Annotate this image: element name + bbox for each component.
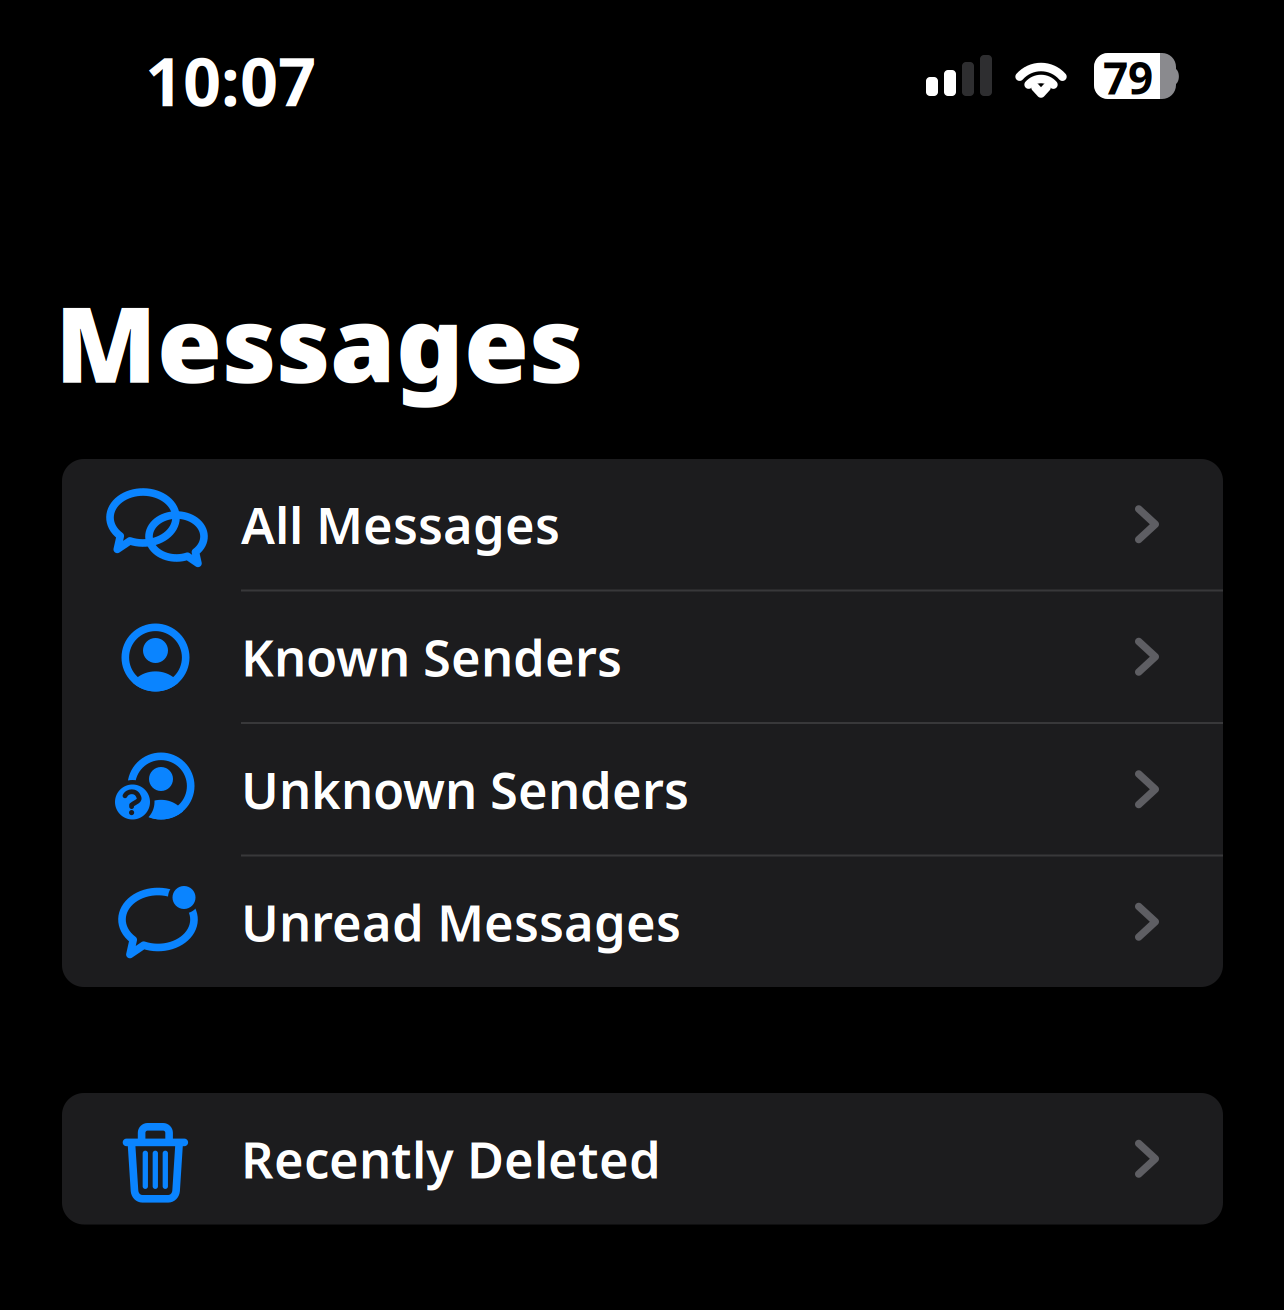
staticText: Unread Messages [241,888,681,955]
button[interactable]: Unknown Senders [62,724,1223,854]
button[interactable]: Known Senders [62,591,1223,722]
staticText: 79 [1103,48,1153,107]
button[interactable]: Unread Messages [62,856,1223,987]
staticText: Unknown Senders [241,756,689,823]
staticText: Known Senders [241,623,622,690]
button[interactable]: Recently Deleted [62,1093,1223,1224]
staticText: 10:07 [145,36,316,124]
staticText: Messages [55,272,583,412]
staticText: Recently Deleted [241,1125,661,1192]
staticText: All Messages [241,491,560,558]
button[interactable]: All Messages [62,459,1223,589]
